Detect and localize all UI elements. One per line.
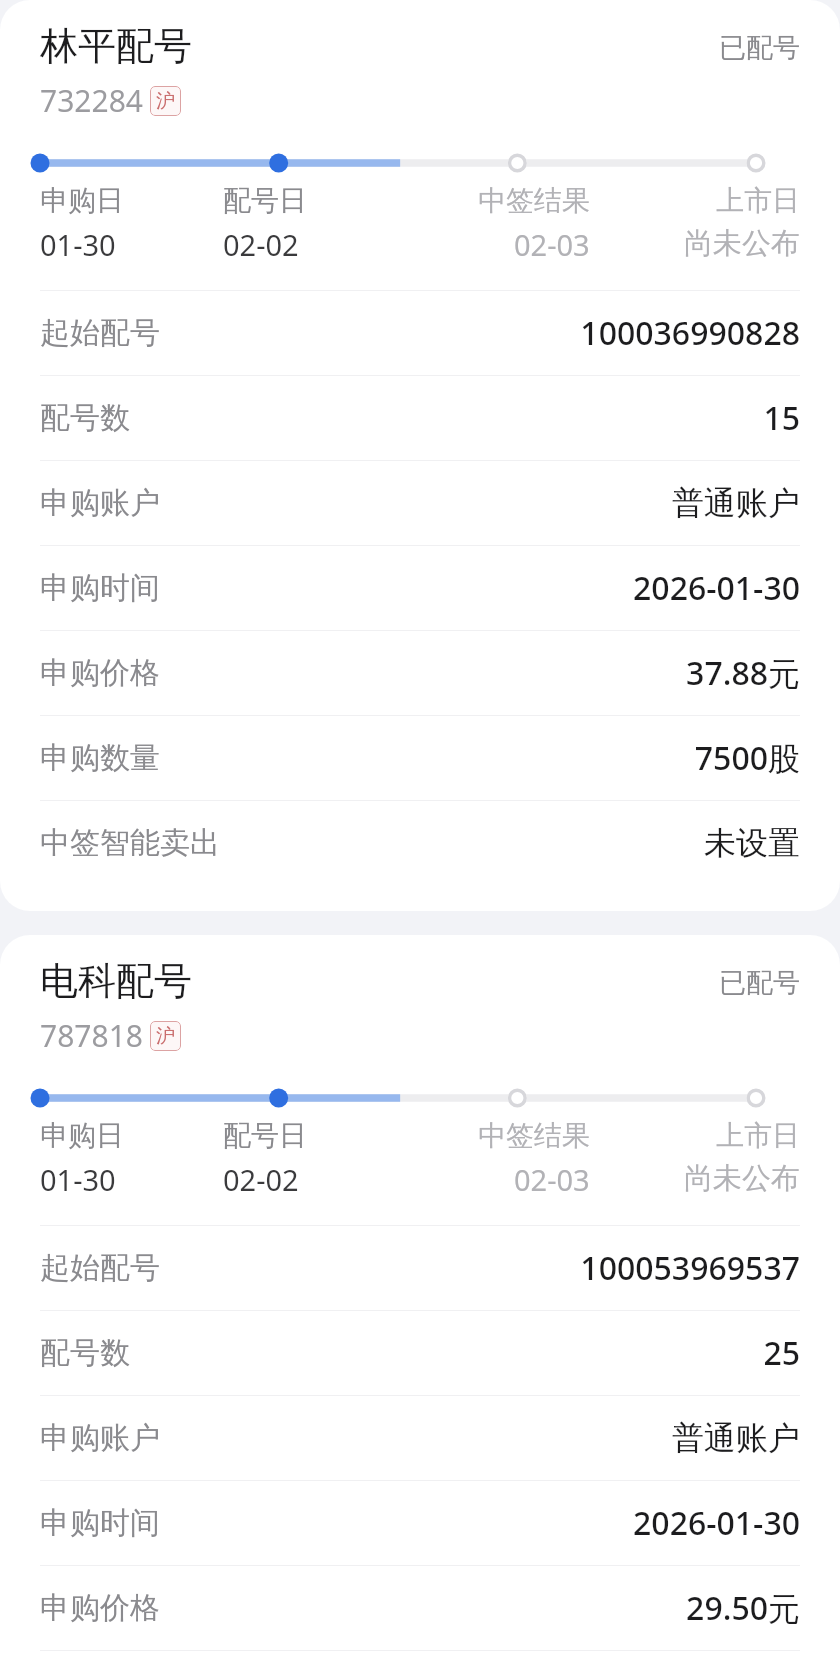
staticText: 尚未公布 <box>684 1160 800 1197</box>
staticText: 100036990828 <box>580 311 800 355</box>
staticText: 中签结果 <box>478 183 590 218</box>
staticText: 起始配号 <box>40 314 160 352</box>
staticText: 申购账户 <box>40 484 160 522</box>
staticText: 上市日 <box>716 183 800 218</box>
button[interactable]: 起始配号 <box>0 291 840 375</box>
staticText: 配号数 <box>40 399 130 437</box>
staticText: 29.50元 <box>686 1586 800 1630</box>
button[interactable]: 申购时间 <box>0 1481 840 1565</box>
staticText: 2026-01-30 <box>633 566 800 610</box>
staticText: 01-30 <box>40 1160 116 1199</box>
button[interactable]: 申购账户 <box>0 461 840 545</box>
staticText: 尚未公布 <box>684 225 800 262</box>
staticText: 申购时间 <box>40 1504 160 1542</box>
staticText: 已配号 <box>719 31 800 65</box>
staticText: 申购日 <box>40 183 124 218</box>
button[interactable]: 申购账户 <box>0 1396 840 1480</box>
staticText: 2026-01-30 <box>633 1501 800 1545</box>
staticText: 申购时间 <box>40 569 160 607</box>
staticText: 沪 <box>156 89 175 113</box>
staticText: 起始配号 <box>40 1249 160 1287</box>
staticText: 中签智能卖出 <box>40 824 220 862</box>
staticText: 林平配号 <box>40 22 192 70</box>
staticText: 电科配号 <box>40 957 192 1005</box>
staticText: 配号日 <box>223 1118 307 1153</box>
staticText: 已配号 <box>719 966 800 1000</box>
staticText: 申购数量 <box>40 739 160 777</box>
staticText: 中签结果 <box>478 1118 590 1153</box>
staticText: 沪 <box>156 1024 175 1048</box>
staticText: 02-03 <box>514 225 590 264</box>
staticText: 787818 <box>40 1015 143 1056</box>
staticText: 37.88元 <box>686 651 800 695</box>
staticText: 02-02 <box>223 1160 299 1199</box>
button[interactable]: 配号数 <box>0 376 840 460</box>
staticText: 100053969537 <box>580 1246 800 1290</box>
staticText: 7500股 <box>694 736 800 780</box>
staticText: 申购账户 <box>40 1419 160 1457</box>
staticText: 配号日 <box>223 183 307 218</box>
staticText: 未设置 <box>704 823 800 863</box>
button[interactable]: 林平配号 <box>0 0 840 911</box>
staticText: 申购价格 <box>40 654 160 692</box>
staticText: 配号数 <box>40 1334 130 1372</box>
staticText: 02-02 <box>223 225 299 264</box>
button[interactable]: 申购数量 <box>0 716 840 800</box>
staticText: 25 <box>763 1331 800 1375</box>
staticText: 申购日 <box>40 1118 124 1153</box>
staticText: 上市日 <box>716 1118 800 1153</box>
staticText: 15 <box>763 396 800 440</box>
button[interactable]: 申购价格 <box>0 631 840 715</box>
staticText: 普通账户 <box>672 483 800 523</box>
staticText: 普通账户 <box>672 1418 800 1458</box>
button[interactable]: 起始配号 <box>0 1226 840 1310</box>
button[interactable]: 中签智能卖出 <box>0 801 840 885</box>
button[interactable]: 配号数 <box>0 1311 840 1395</box>
button[interactable]: 申购价格 <box>0 1566 840 1650</box>
staticText: 02-03 <box>514 1160 590 1199</box>
staticText: 申购价格 <box>40 1589 160 1627</box>
button[interactable]: 申购时间 <box>0 546 840 630</box>
staticText: 732284 <box>40 80 143 121</box>
staticText: 01-30 <box>40 225 116 264</box>
button[interactable]: 电科配号 <box>0 935 840 1657</box>
